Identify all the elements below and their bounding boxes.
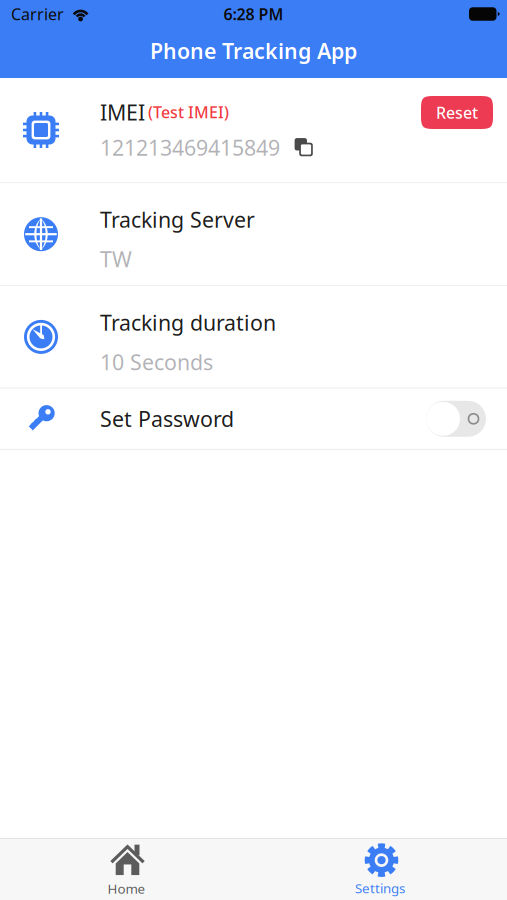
staticText: Carrier	[11, 3, 64, 25]
button[interactable]: IMEI	[0, 78, 507, 182]
button[interactable]: Set Password	[0, 389, 507, 449]
staticText: Phone Tracking App	[150, 37, 357, 65]
staticText: (Test IMEI)	[148, 101, 229, 123]
staticText: IMEI	[100, 98, 145, 126]
staticText: Tracking Server	[100, 205, 255, 234]
staticText: 6:28 PM	[223, 3, 283, 25]
staticText: Settings	[355, 879, 405, 897]
button[interactable]: Home	[0, 839, 253, 900]
staticText: Set Password	[100, 405, 234, 433]
button[interactable]: Copy IMEI	[294, 137, 314, 157]
staticText: 121213469415849	[100, 133, 280, 162]
button[interactable]: Reset	[421, 96, 493, 129]
staticText: 10 Seconds	[100, 348, 213, 376]
staticText: Reset	[436, 102, 478, 123]
staticText: TW	[100, 245, 132, 273]
button[interactable]: Settings	[253, 839, 507, 900]
button[interactable]: Tracking duration	[0, 286, 507, 387]
staticText: Home	[107, 880, 145, 897]
button[interactable]: Tracking Server	[0, 183, 507, 285]
staticText: Tracking duration	[100, 308, 276, 337]
button[interactable]: Set Password toggle	[426, 401, 486, 437]
